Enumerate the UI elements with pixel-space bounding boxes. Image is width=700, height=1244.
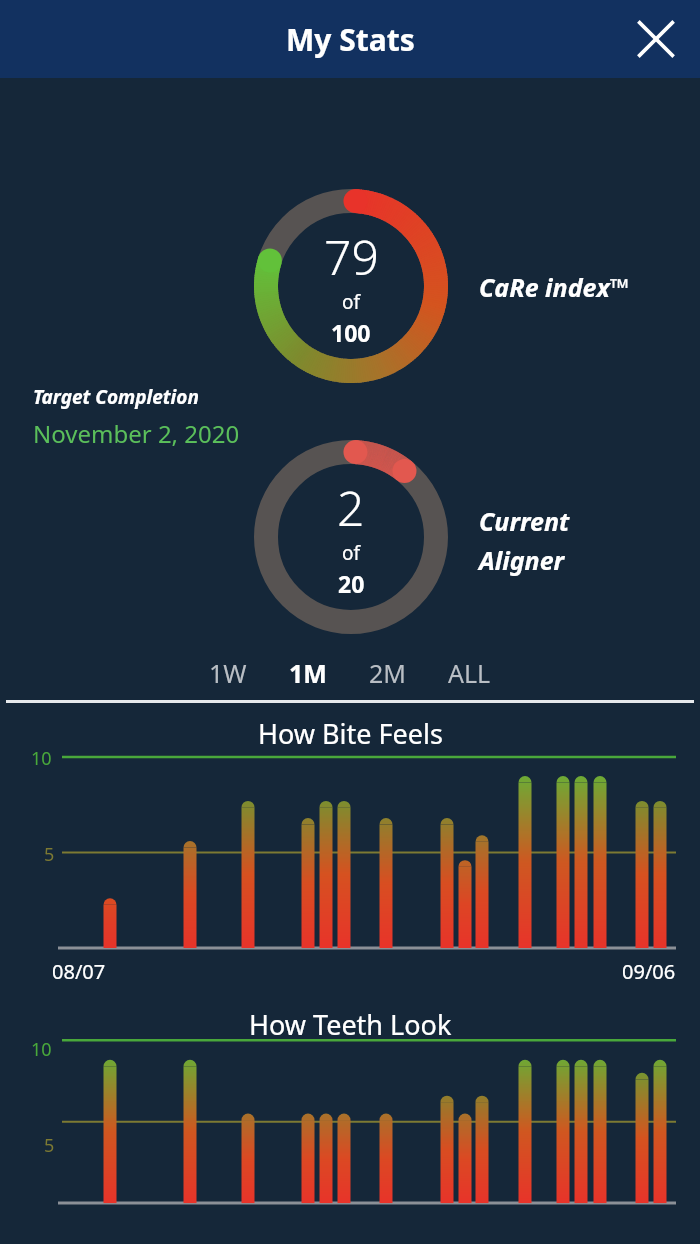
button[interactable]: 1W	[195, 652, 261, 694]
staticText: 2M	[369, 656, 406, 690]
staticText: of	[342, 289, 361, 315]
staticText: 08/07	[52, 958, 106, 985]
staticText: 10	[31, 746, 52, 771]
staticText: Target Completion	[33, 384, 199, 410]
button[interactable]: 2M	[355, 652, 420, 694]
button[interactable]: 1M	[275, 652, 341, 694]
staticText: 2	[337, 475, 365, 540]
staticText: My Stats	[286, 19, 415, 60]
staticText: 10	[31, 1037, 52, 1062]
staticText: 5	[44, 1133, 55, 1158]
staticText: 5	[44, 842, 55, 867]
staticText: 79	[324, 224, 379, 289]
staticText: November 2, 2020	[33, 417, 240, 450]
staticText: ALL	[448, 656, 491, 690]
staticText: 1W	[209, 656, 247, 690]
staticText: 100	[331, 317, 371, 348]
staticText: 09/06	[622, 958, 676, 985]
staticText: How Bite Feels	[258, 715, 443, 752]
button[interactable]: ALL	[434, 652, 505, 694]
staticText: CaRe index™	[479, 270, 630, 304]
staticText: Aligner	[479, 543, 565, 577]
staticText: Current	[479, 504, 570, 538]
button[interactable]: Close	[626, 9, 686, 69]
staticText: of	[342, 540, 361, 566]
staticText: 20	[338, 568, 365, 599]
staticText: How Teeth Look	[249, 1006, 452, 1043]
staticText: 1M	[289, 656, 327, 690]
